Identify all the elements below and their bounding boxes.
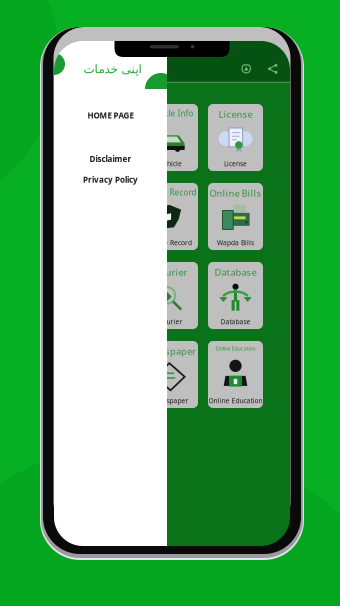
button[interactable]: HOME PAGE (54, 107, 167, 124)
staticText: Vehicle (159, 159, 182, 168)
button[interactable]: Crime Record (143, 183, 198, 250)
staticText: Online Education (208, 396, 262, 405)
button[interactable]: Courier (143, 262, 198, 329)
staticText: Crime Record (144, 187, 196, 198)
button[interactable]: Newspaper (143, 341, 198, 408)
staticText: Disclaimer (89, 154, 131, 164)
button[interactable]: Database (208, 262, 263, 329)
button[interactable]: Online Bills (208, 183, 263, 250)
staticText: Online Bills (209, 187, 261, 199)
button[interactable]: Rate this app (238, 60, 254, 77)
button[interactable]: Privacy Policy (54, 171, 167, 188)
staticText: Database (214, 266, 256, 278)
button[interactable]: Online Education (208, 341, 263, 408)
staticText: اپنی خدمات (83, 62, 141, 76)
button[interactable]: Vehicle Info (143, 104, 198, 171)
staticText: Courier (158, 317, 182, 326)
staticText: Privacy Policy (83, 174, 138, 185)
staticText: Courier (153, 266, 187, 278)
staticText: HOME PAGE (87, 110, 133, 121)
staticText: Online Education (215, 345, 255, 352)
button[interactable]: License (208, 104, 263, 171)
staticText: Crime Record (149, 238, 192, 247)
staticText: Database (220, 317, 250, 326)
staticText: Vehicle Info (147, 108, 193, 119)
staticText: Newspaper (152, 396, 188, 405)
button[interactable]: Share (264, 60, 281, 77)
staticText: License (224, 159, 247, 168)
staticText: Wapda Bills (217, 238, 254, 247)
staticText: License (218, 108, 252, 120)
staticText: Newspaper (145, 345, 196, 357)
button[interactable]: Disclaimer (54, 151, 167, 167)
